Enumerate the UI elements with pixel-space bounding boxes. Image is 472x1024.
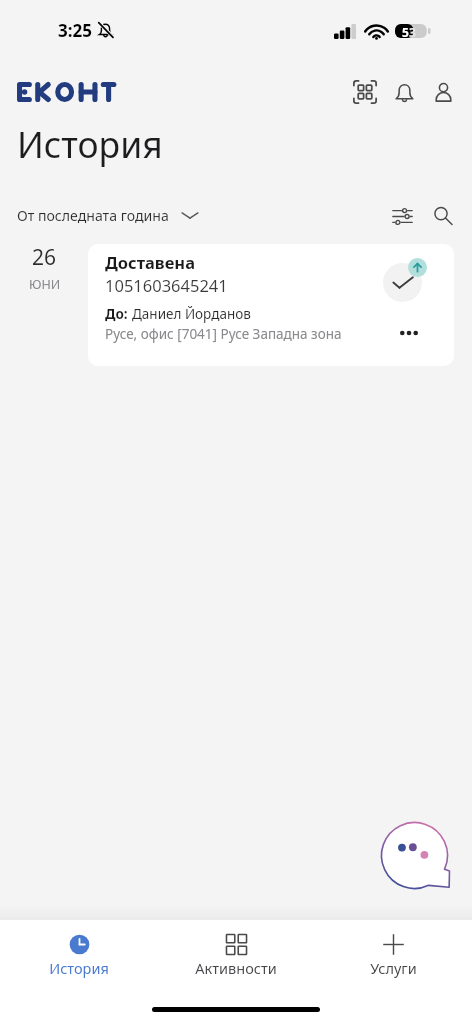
staticText: До: [105,305,132,323]
button[interactable]: Chat support [378,819,456,897]
staticText: 26 [32,243,57,272]
button[interactable]: История [19,932,139,984]
staticText: Даниел Йорданов [132,305,251,323]
button[interactable] [17,81,118,103]
staticText: 1051603645241 [105,274,228,296]
staticText: ЮНИ [29,276,61,293]
button[interactable]: Search [424,197,462,235]
button[interactable]: От последната година [11,202,205,229]
staticText: Услуги [370,958,417,978]
button[interactable]: Активности [176,932,296,984]
button[interactable]: Услуги [333,932,453,984]
button[interactable]: Filter [383,197,421,235]
button[interactable]: More options [392,316,426,350]
staticText: От последната година [17,206,169,225]
staticText: История [49,958,109,978]
button[interactable]: Scan QR code [347,74,383,110]
staticText: История [17,120,163,168]
staticText: Русе, офис [7041] Русе Западна зона [105,325,342,343]
staticText: 3:25 [58,19,92,42]
button[interactable]: Profile [425,74,461,110]
staticText: 3 [409,24,416,38]
staticText: 5 [402,24,409,38]
button[interactable]: Notifications [386,74,422,110]
staticText: Доставена [105,251,195,273]
staticText: Активности [195,958,277,978]
button[interactable]: Доставена [88,244,454,366]
